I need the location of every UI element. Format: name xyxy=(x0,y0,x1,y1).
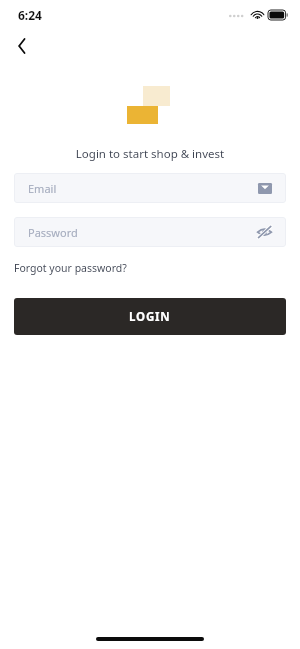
staticText: LOGIN xyxy=(129,309,171,325)
button[interactable]: Forgot your password? xyxy=(14,259,127,277)
staticText: Email xyxy=(28,181,258,196)
button[interactable]: LOGIN xyxy=(14,298,286,335)
button[interactable]: Password xyxy=(14,217,286,247)
button[interactable]: Email xyxy=(14,173,286,203)
staticText: Password xyxy=(28,225,256,240)
button[interactable]: Back xyxy=(8,32,36,60)
staticText: Forgot your password? xyxy=(14,261,127,275)
button[interactable]: Show password xyxy=(256,224,272,240)
staticText: Login to start shop & invest xyxy=(0,146,300,162)
staticText: 6:24 xyxy=(18,7,42,23)
